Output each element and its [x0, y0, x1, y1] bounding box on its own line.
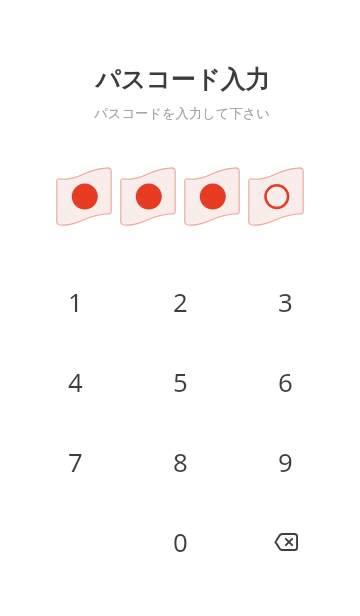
button[interactable]: 3: [245, 261, 325, 341]
button[interactable]: 2: [140, 261, 220, 341]
button[interactable]: Backspace: [245, 501, 325, 581]
button[interactable]: 8: [140, 421, 220, 501]
other: Digit entered: [184, 167, 240, 224]
button[interactable]: 1: [35, 261, 115, 341]
button[interactable]: 5: [140, 341, 220, 421]
staticText: 0: [173, 524, 188, 559]
staticText: 8: [173, 444, 188, 479]
other: Digit entered: [56, 167, 112, 224]
other: Empty digit: [248, 167, 304, 224]
staticText: 2: [173, 284, 188, 319]
staticText: 7: [68, 444, 83, 479]
staticText: 9: [278, 444, 293, 479]
other: Digit entered: [120, 167, 176, 224]
button[interactable]: 4: [35, 341, 115, 421]
button[interactable]: 9: [245, 421, 325, 501]
button[interactable]: 7: [35, 421, 115, 501]
staticText: 6: [278, 364, 293, 399]
button[interactable]: 6: [245, 341, 325, 421]
staticText: 1: [68, 284, 83, 319]
staticText: パスコード入力: [95, 64, 270, 95]
staticText: 4: [68, 364, 83, 399]
staticText: 3: [278, 284, 293, 319]
staticText: 5: [173, 364, 188, 399]
button[interactable]: 0: [140, 501, 220, 581]
staticText: パスコードを入力して下さい: [94, 105, 270, 122]
